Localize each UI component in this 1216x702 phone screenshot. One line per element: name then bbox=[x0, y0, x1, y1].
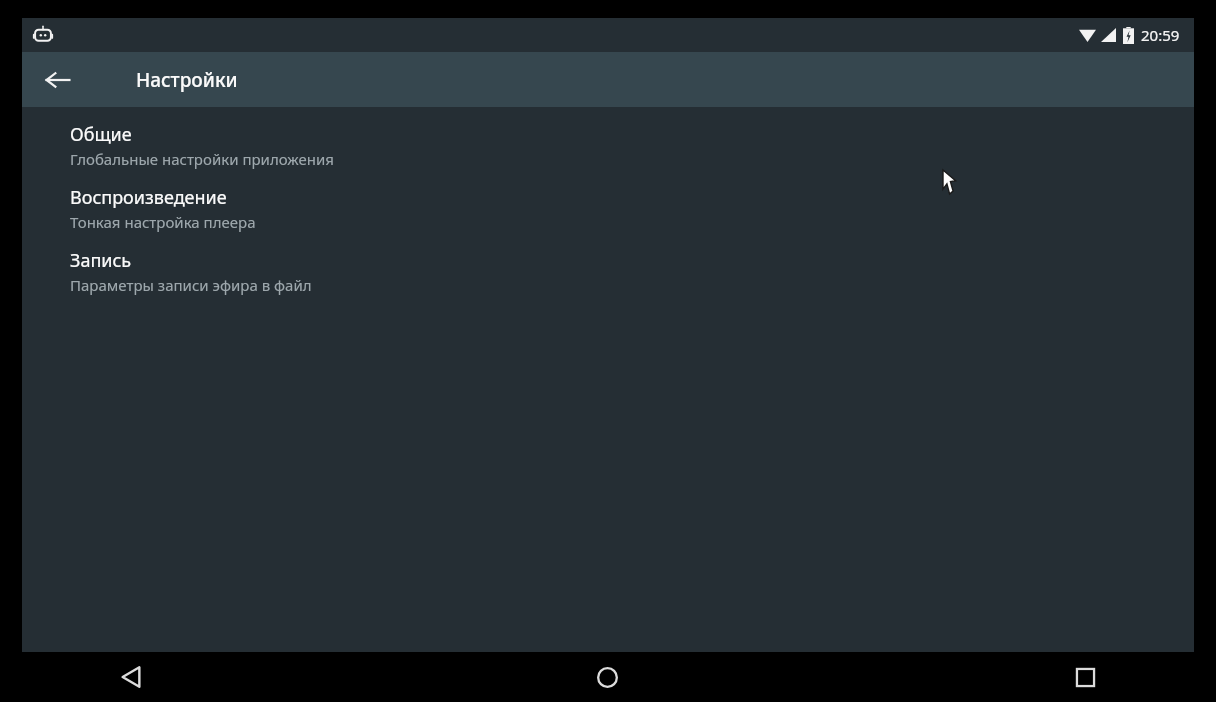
button[interactable]: Back bbox=[101, 652, 161, 702]
button[interactable]: Запись bbox=[22, 242, 1194, 305]
staticText: Тонкая настройка плеера bbox=[70, 212, 256, 232]
button[interactable]: Общие bbox=[22, 116, 1194, 179]
staticText: Общие bbox=[70, 122, 132, 147]
staticText: Воспроизведение bbox=[70, 185, 227, 210]
button[interactable]: Home bbox=[577, 652, 637, 702]
staticText: 20:59 bbox=[1141, 25, 1180, 45]
staticText: Запись bbox=[70, 248, 132, 273]
staticText: Параметры записи эфира в файл bbox=[70, 275, 312, 295]
staticText: Настройки bbox=[136, 67, 238, 93]
staticText: Глобальные настройки приложения bbox=[70, 149, 334, 169]
button[interactable]: Back bbox=[30, 52, 86, 107]
button[interactable]: Recent apps bbox=[1055, 652, 1115, 702]
button[interactable]: Воспроизведение bbox=[22, 179, 1194, 242]
